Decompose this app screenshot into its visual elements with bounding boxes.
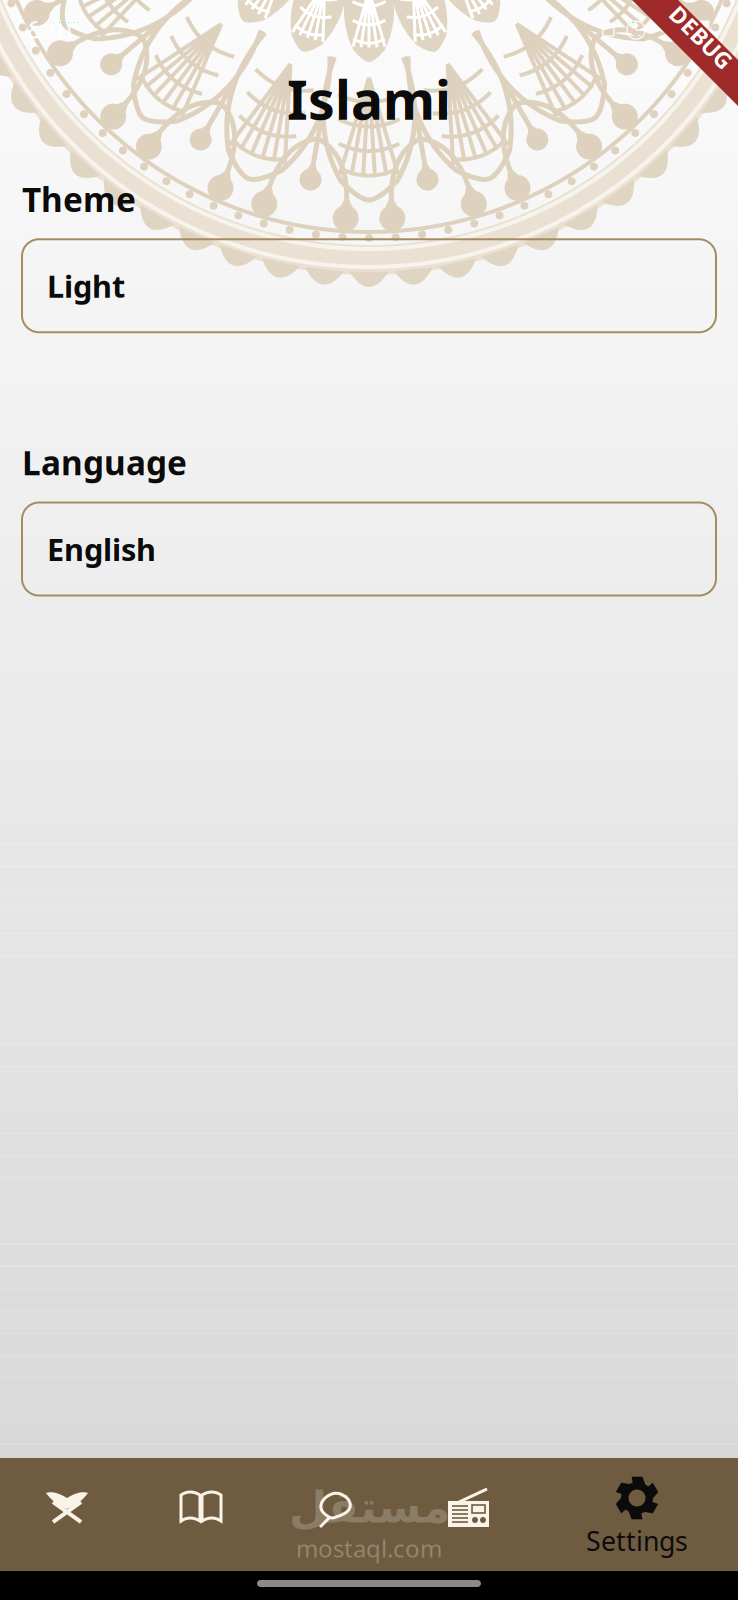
staticText: English bbox=[47, 529, 156, 569]
staticText: مستقل bbox=[288, 1482, 449, 1532]
button[interactable]: Quran bbox=[0, 1458, 134, 1571]
staticText: Light bbox=[47, 265, 125, 306]
staticText: DEBUG bbox=[662, 22, 738, 52]
staticText: ▫ ◷ ⌁ ⌇ ▮ bbox=[600, 14, 712, 42]
button[interactable]: Hadeth bbox=[134, 1458, 268, 1571]
button[interactable]: Sebha bbox=[268, 1458, 402, 1571]
button[interactable]: Radio bbox=[402, 1458, 536, 1571]
staticText: Theme bbox=[22, 177, 136, 221]
button[interactable]: Settings bbox=[536, 1458, 738, 1571]
button[interactable]: English bbox=[22, 502, 716, 595]
button[interactable]: Light bbox=[22, 239, 716, 332]
staticText: mostaql.com bbox=[296, 1532, 442, 1564]
staticText: ٤:٥٢ bbox=[26, 9, 79, 47]
staticText: Settings bbox=[586, 1523, 688, 1558]
staticText: Language bbox=[22, 440, 187, 485]
staticText: Islami bbox=[287, 64, 451, 134]
